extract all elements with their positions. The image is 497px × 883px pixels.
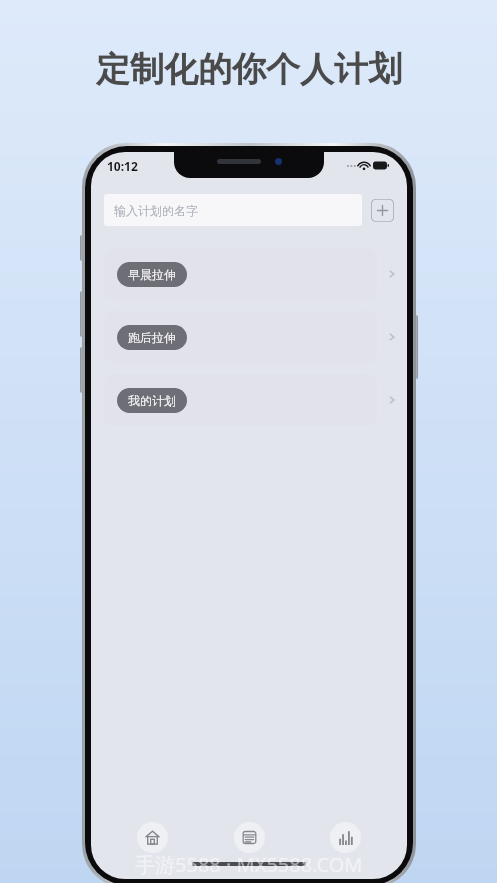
button[interactable]: 输入计划的名字 (104, 194, 362, 226)
button[interactable]: 跑后拉伸 (91, 311, 407, 363)
staticText: 跑后拉伸 (128, 330, 176, 345)
button[interactable]: Add plan (371, 199, 394, 222)
button[interactable]: 我的计划 (91, 374, 407, 426)
staticText: 10:12 (107, 158, 138, 174)
staticText: 早晨拉伸 (128, 267, 176, 282)
staticText: 定制化的你个人计划 (96, 48, 402, 91)
button[interactable]: 早晨拉伸 (91, 248, 407, 300)
staticText: 输入计划的名字 (114, 203, 198, 218)
staticText: 我的计划 (128, 393, 176, 408)
staticText: 手游5588 · MX5588.COM (135, 851, 363, 875)
button[interactable]: Stats (330, 822, 361, 853)
button[interactable]: Home (137, 822, 168, 853)
button[interactable]: Plans (234, 822, 265, 853)
